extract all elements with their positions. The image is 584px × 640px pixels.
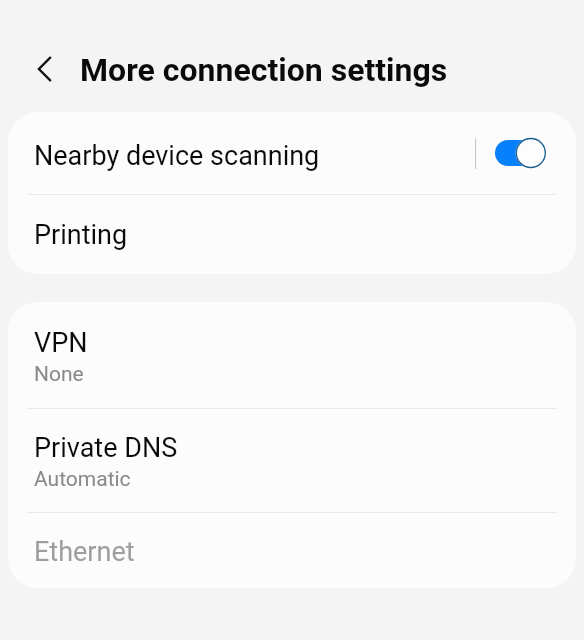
staticText: Private DNS bbox=[34, 432, 178, 464]
button[interactable]: Printing bbox=[8, 195, 576, 274]
staticText: Nearby device scanning bbox=[34, 140, 320, 172]
button[interactable]: Navigate up bbox=[23, 47, 67, 91]
staticText: Automatic bbox=[34, 467, 131, 492]
staticText: None bbox=[34, 362, 84, 387]
button[interactable]: Ethernet bbox=[8, 513, 576, 588]
staticText: Ethernet bbox=[34, 536, 135, 568]
button[interactable]: VPN bbox=[8, 302, 576, 408]
button[interactable]: Nearby device scanning bbox=[8, 112, 576, 194]
staticText: More connection settings bbox=[80, 51, 448, 89]
button[interactable]: Nearby device scanning switch, on bbox=[476, 121, 576, 185]
button[interactable]: Private DNS bbox=[8, 409, 576, 512]
staticText: Printing bbox=[34, 219, 128, 251]
staticText: VPN bbox=[34, 327, 88, 359]
